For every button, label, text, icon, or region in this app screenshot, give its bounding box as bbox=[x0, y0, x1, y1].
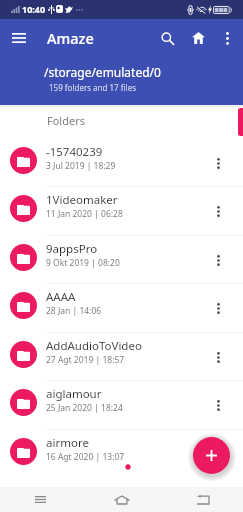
staticText: aiglamour bbox=[46, 386, 204, 402]
button[interactable]: Add new bbox=[193, 437, 230, 474]
staticText: 159 folders and 17 files bbox=[49, 82, 136, 93]
button[interactable]: Item options bbox=[206, 345, 231, 370]
button[interactable]: Item options bbox=[206, 248, 231, 273]
staticText: 25 Jan 2020 | 18:24 bbox=[46, 402, 123, 414]
staticText: 10:40 bbox=[22, 3, 46, 15]
staticText: airmore bbox=[46, 435, 204, 451]
button[interactable]: Item options bbox=[206, 393, 231, 418]
button[interactable]: 1Videomaker bbox=[0, 182, 243, 230]
button[interactable]: Search bbox=[154, 25, 180, 51]
staticText: Folders bbox=[47, 113, 85, 128]
staticText: 9 Okt 2019 | 08:20 bbox=[46, 257, 120, 269]
button[interactable]: 9appsPro bbox=[0, 231, 243, 279]
button[interactable]: Item options bbox=[206, 296, 231, 321]
button[interactable]: Back bbox=[162, 487, 243, 512]
button[interactable]: AddAudioToVideo bbox=[0, 328, 243, 376]
staticText: 9appsPro bbox=[46, 241, 204, 257]
button[interactable]: aiglamour bbox=[0, 376, 243, 424]
staticText: 28 Jan | 14:06 bbox=[46, 305, 102, 317]
button[interactable]: Item options bbox=[206, 151, 231, 176]
staticText: -15740239 bbox=[46, 144, 204, 160]
button[interactable]: Recent apps bbox=[0, 487, 81, 512]
button[interactable]: Open navigation drawer bbox=[6, 25, 32, 51]
button[interactable]: Home bbox=[81, 487, 162, 512]
button[interactable]: Amaze bbox=[47, 28, 94, 48]
button[interactable]: Fast scroll bbox=[238, 108, 243, 136]
button[interactable]: AAAA bbox=[0, 279, 243, 327]
button[interactable]: More options bbox=[214, 25, 240, 51]
staticText: 11 Jan 2020 | 06:28 bbox=[46, 208, 123, 220]
staticText: /storage/emulated/0 bbox=[44, 64, 161, 80]
staticText: 16 Agt 2020 | 13:07 bbox=[46, 451, 125, 463]
staticText: 3 Jul 2019 | 18:29 bbox=[46, 160, 116, 172]
staticText: 1Videomaker bbox=[46, 192, 204, 208]
staticText: AddAudioToVideo bbox=[46, 338, 204, 354]
button[interactable]: Item options bbox=[206, 199, 231, 224]
button[interactable]: Item options bbox=[206, 442, 231, 467]
staticText: 27 Agt 2019 | 18:57 bbox=[46, 354, 125, 366]
button[interactable]: Go to home directory bbox=[185, 25, 211, 51]
button[interactable]: -15740239 bbox=[0, 134, 243, 182]
button[interactable]: airmore bbox=[0, 425, 243, 473]
staticText: AAAA bbox=[46, 289, 204, 305]
